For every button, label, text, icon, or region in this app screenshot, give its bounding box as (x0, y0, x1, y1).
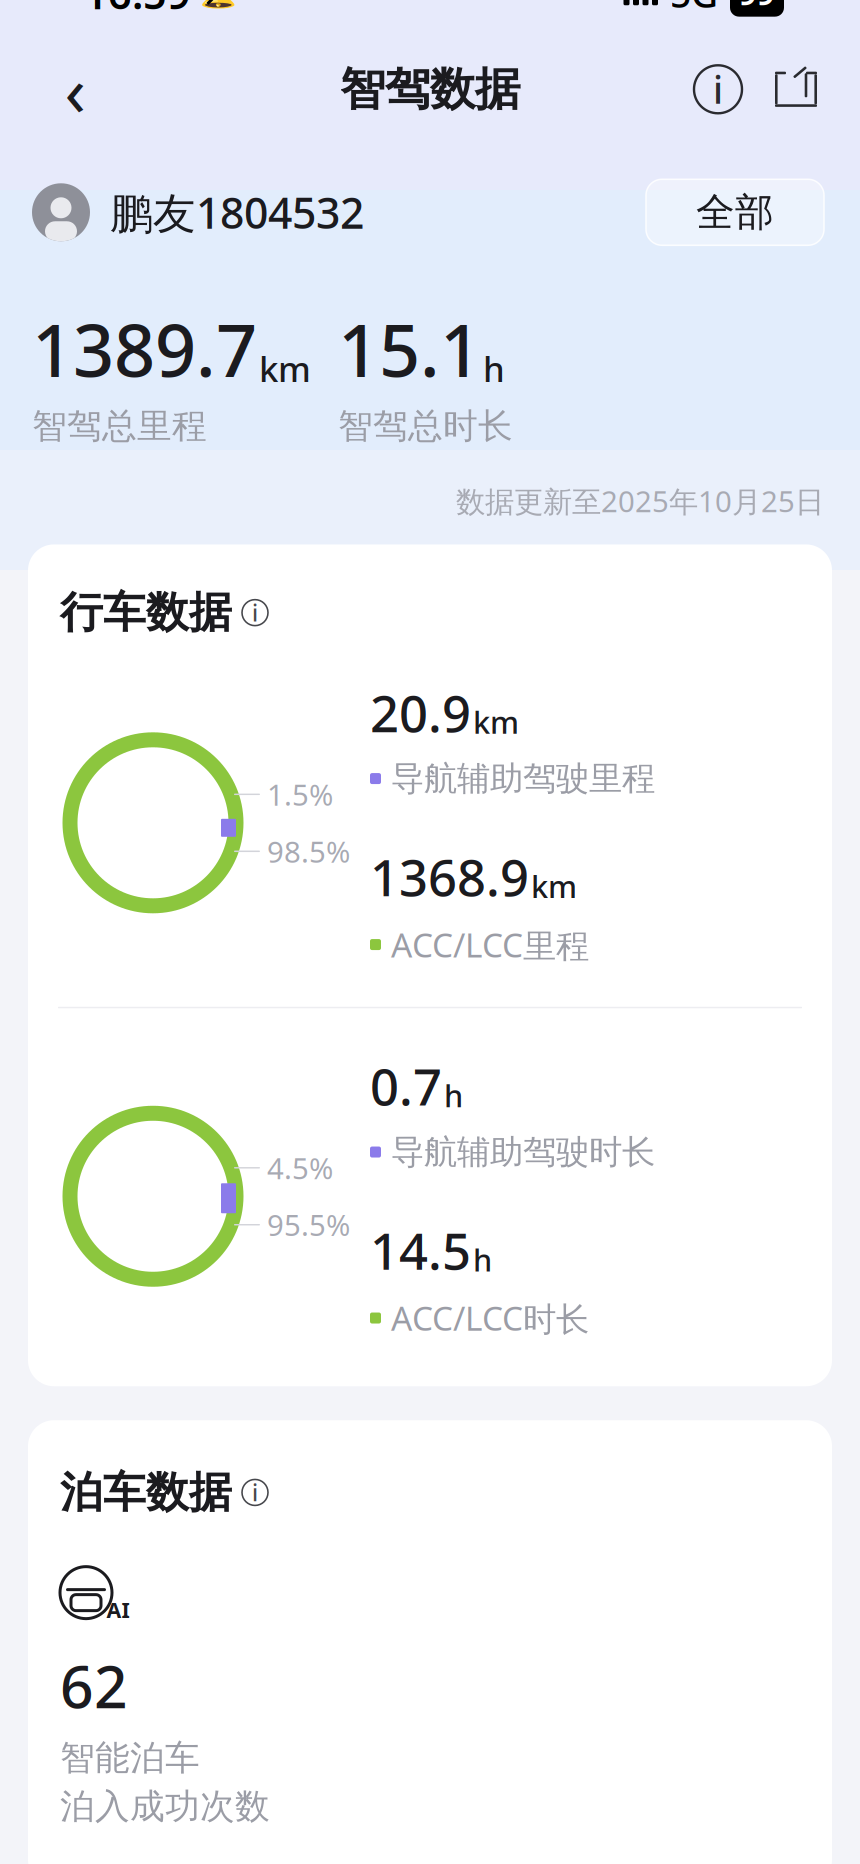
staticText: 智驾总时长 (338, 405, 513, 447)
staticText: h (473, 1239, 492, 1280)
staticText: 5G (670, 0, 718, 18)
staticText: 智驾数据 (340, 61, 520, 117)
staticText: i (252, 1477, 258, 1507)
staticText: h (444, 1075, 463, 1116)
staticText: 99 (739, 0, 775, 14)
staticText: 20.9 (370, 679, 471, 746)
button[interactable]: 返回 (40, 54, 110, 124)
staticText: 智能泊车 (60, 1737, 200, 1779)
staticText: h (483, 345, 505, 391)
staticText: 15.1 (338, 301, 481, 397)
button[interactable]: 分享 (768, 61, 824, 117)
staticText: 泊入成功次数 (60, 1785, 270, 1828)
staticText: 14.5 (370, 1216, 471, 1284)
staticText: ACC/LCC时长 (391, 1296, 589, 1340)
staticText: 🔔 (199, 0, 236, 10)
staticText: AI (106, 1595, 129, 1624)
staticText: 导航辅助驾驶时长 (391, 1132, 655, 1172)
staticText: 导航辅助驾驶里程 (391, 758, 655, 799)
staticText: km (259, 345, 311, 391)
staticText: 鹏友1804532 (110, 184, 364, 241)
staticText: 泊车数据 (60, 1466, 232, 1519)
staticText: 数据更新至2025年10月25日 (456, 481, 824, 520)
staticText: 98.5% (267, 832, 350, 871)
staticText: km (531, 866, 577, 906)
staticText: i (252, 598, 258, 628)
staticText: km (473, 702, 519, 742)
button[interactable]: 关于泊车数据 (242, 1479, 268, 1505)
button[interactable]: 关于行车数据 (242, 600, 268, 626)
staticText: 0.7 (370, 1052, 442, 1120)
staticText: ACC/LCC里程 (391, 922, 589, 967)
staticText: 62 (60, 1647, 128, 1724)
staticText: 智驾总里程 (32, 405, 207, 447)
button[interactable]: 说明 (694, 65, 742, 113)
staticText: 1389.7 (32, 301, 257, 397)
staticText: 行车数据 (60, 586, 232, 639)
staticText: 全部 (696, 188, 774, 236)
button[interactable]: 全部 (646, 179, 824, 245)
staticText: 16:59 (84, 0, 191, 21)
staticText: 4.5% (267, 1148, 333, 1187)
staticText: 1368.9 (370, 843, 529, 910)
staticText: 95.5% (267, 1205, 350, 1244)
staticText: ‹ (64, 43, 85, 135)
staticText: 1.5% (267, 775, 333, 814)
staticText: i (713, 64, 723, 114)
